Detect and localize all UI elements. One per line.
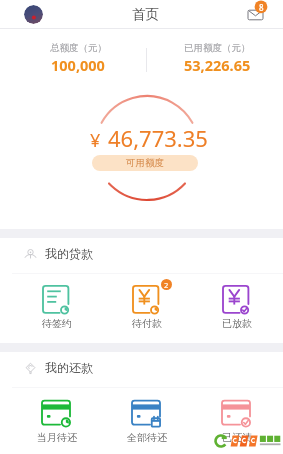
staticText: ¥	[90, 128, 101, 153]
button[interactable]: 已放款	[192, 238, 282, 343]
button[interactable]: 全部待还	[102, 352, 192, 454]
button[interactable]: Messages	[243, 0, 269, 26]
staticText: 当月待还	[37, 431, 77, 444]
button[interactable]: 当月待还	[12, 352, 102, 454]
staticText: 已用额度（元）	[184, 42, 251, 54]
staticText: 待付款	[132, 317, 162, 330]
staticText: 2	[164, 280, 169, 290]
staticText: 我的还款	[45, 360, 93, 375]
staticText: 已还清	[222, 431, 252, 444]
button[interactable]: 已还清	[192, 352, 282, 454]
staticText: 总额度（元）	[50, 42, 107, 54]
staticText: 首页	[132, 6, 159, 23]
button[interactable]: 待签约	[12, 238, 102, 343]
staticText: 53,226.65	[184, 55, 251, 75]
button[interactable]: Profile	[24, 5, 43, 24]
staticText: 100,000	[51, 55, 105, 75]
button[interactable]: 2	[102, 238, 192, 343]
staticText: 46,773.35	[108, 123, 208, 153]
staticText: 待签约	[42, 317, 72, 330]
staticText: 全部待还	[127, 431, 167, 444]
staticText: 我的贷款	[45, 246, 93, 261]
staticText: 8	[259, 2, 264, 13]
staticText: 已放款	[222, 317, 252, 330]
staticText: 可用额度	[126, 157, 164, 169]
